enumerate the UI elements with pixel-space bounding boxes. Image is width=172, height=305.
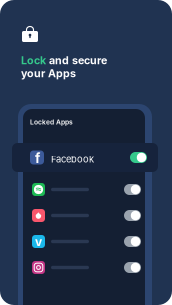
staticText: Lock [21,54,46,67]
button[interactable]: App [32,183,141,196]
button[interactable]: App [32,209,141,222]
button[interactable]: App [32,235,141,248]
staticText: v [35,235,42,249]
staticText: Locked Apps [30,118,73,126]
staticText: f [35,150,40,166]
button[interactable]: f [12,143,158,172]
staticText: and secure [46,54,107,67]
button[interactable]: App [32,261,141,274]
staticText: Facebook [51,153,94,165]
staticText: your Apps [21,67,76,80]
